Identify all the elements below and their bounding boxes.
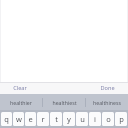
button[interactable]: Key t (50, 112, 62, 126)
button[interactable]: Key o (102, 112, 114, 126)
staticText: t (55, 114, 58, 124)
button[interactable]: Key e (25, 112, 36, 126)
button[interactable]: Key p (115, 112, 127, 126)
button[interactable]: Key r (37, 112, 49, 126)
staticText: q (4, 114, 9, 124)
staticText: i (94, 114, 96, 124)
staticText: u (80, 114, 85, 124)
button[interactable]: healthiest (43, 94, 85, 110)
button[interactable]: Key q (1, 112, 12, 126)
staticText: o (106, 114, 111, 124)
button[interactable]: Key y (63, 112, 75, 126)
staticText: healthiest (52, 99, 77, 106)
button[interactable]: Done (100, 82, 115, 94)
staticText: p (119, 114, 124, 124)
button[interactable]: healthiness (86, 94, 128, 110)
staticText: r (41, 114, 45, 124)
staticText: healthiness (93, 99, 121, 106)
button[interactable]: Key u (76, 112, 88, 126)
button[interactable]: Key w (13, 112, 24, 126)
staticText: healthier (10, 99, 32, 106)
staticText: e (28, 114, 33, 124)
button[interactable]: Key i (89, 112, 101, 126)
staticText: Done (100, 84, 115, 92)
button[interactable]: Clear (13, 82, 27, 94)
staticText: Clear (13, 84, 27, 92)
button[interactable]: healthier (0, 94, 42, 110)
staticText: w (16, 114, 22, 124)
staticText: y (67, 114, 71, 124)
